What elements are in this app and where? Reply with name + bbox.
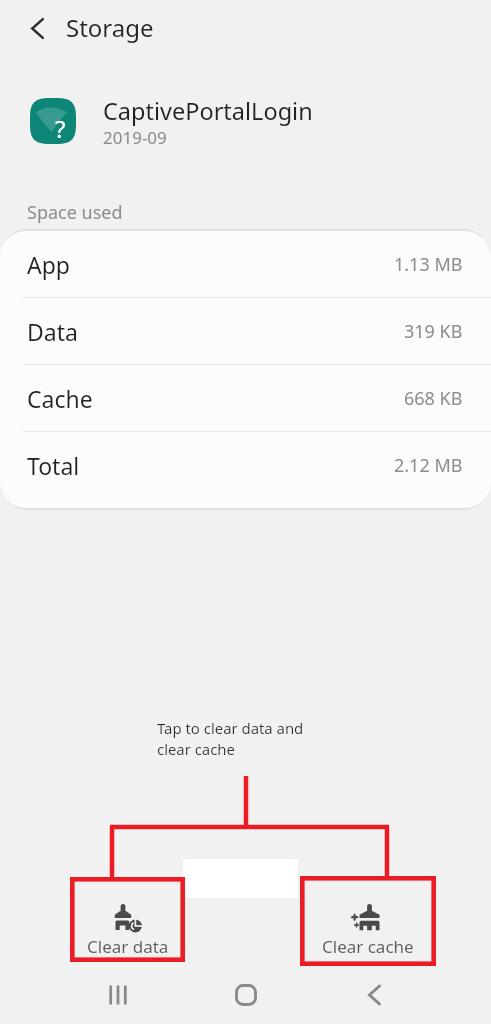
staticText: Total <box>27 450 80 481</box>
staticText: 2019-09 <box>103 126 167 149</box>
button[interactable]: App <box>0 231 491 298</box>
staticText: Clear data <box>87 935 169 958</box>
staticText: App <box>27 249 70 280</box>
button[interactable]: Back <box>16 7 59 50</box>
button[interactable]: Recents <box>86 972 150 1018</box>
button[interactable]: Clear cache <box>300 876 436 966</box>
staticText: 668 KB <box>404 386 463 411</box>
staticText: Tap to clear data and clear cache <box>157 718 304 760</box>
staticText: Cache <box>27 383 93 414</box>
button[interactable]: Clear data <box>70 877 185 962</box>
button[interactable]: Total <box>0 432 491 499</box>
staticText: ? <box>55 112 66 145</box>
staticText: Clear cache <box>322 935 414 958</box>
staticText: 1.13 MB <box>394 252 463 277</box>
button[interactable]: Back <box>342 972 406 1018</box>
staticText: 2.12 MB <box>394 453 463 478</box>
staticText: CaptivePortalLogin <box>103 95 313 127</box>
staticText: Space used <box>27 200 123 225</box>
button[interactable]: Data <box>0 298 491 365</box>
staticText: Data <box>27 316 78 347</box>
button[interactable]: Home <box>214 972 278 1018</box>
button[interactable]: Cache <box>0 365 491 432</box>
staticText: 319 KB <box>404 319 463 344</box>
staticText: Storage <box>66 11 154 44</box>
